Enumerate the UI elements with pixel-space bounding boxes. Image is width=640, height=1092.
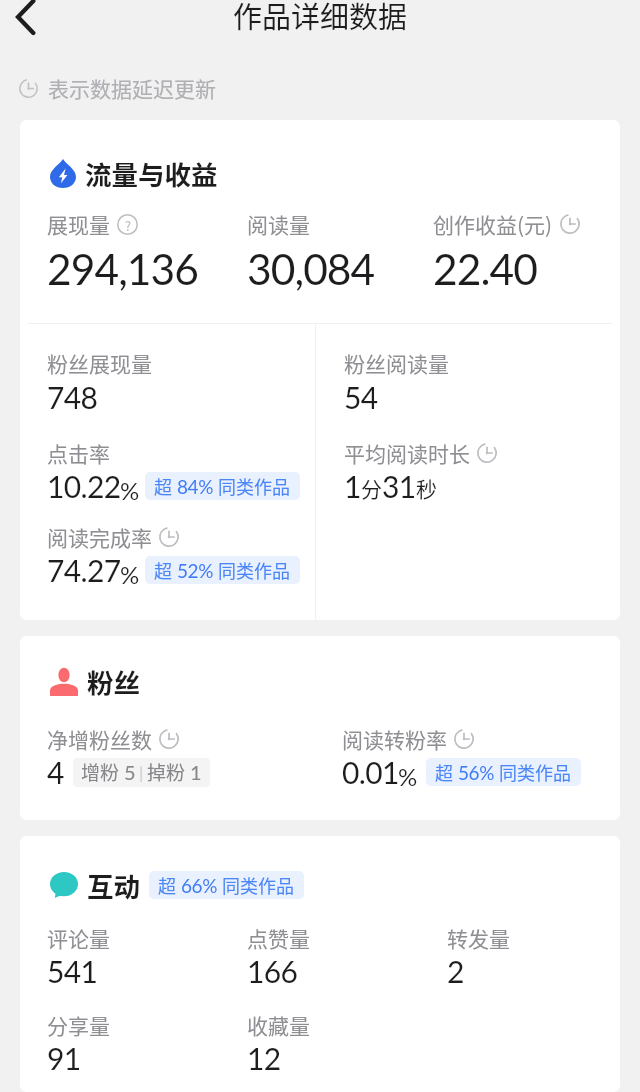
- staticText: 作品详细数据: [233, 0, 408, 36]
- staticText: 点赞量: [247, 923, 310, 953]
- staticText: 84%: [177, 475, 214, 498]
- staticText: 22.40: [433, 243, 537, 294]
- staticText: 同类作品: [214, 557, 291, 583]
- staticText: 增粉: [81, 758, 124, 786]
- staticText: 超: [435, 759, 458, 785]
- staticText: 12: [247, 1040, 281, 1076]
- staticText: 分享量: [47, 1010, 110, 1040]
- staticText: 分: [361, 473, 382, 503]
- staticText: 阅读完成率: [47, 522, 152, 552]
- staticText: 31: [382, 468, 416, 504]
- staticText: 表示数据延迟更新: [48, 73, 216, 103]
- staticText: 0.01: [342, 754, 399, 790]
- staticText: 10.22: [47, 468, 121, 504]
- staticText: 54: [344, 379, 378, 415]
- staticText: 阅读量: [247, 209, 310, 239]
- staticText: 1: [190, 760, 202, 784]
- button[interactable]: Back: [1, 0, 49, 41]
- staticText: 点击率: [47, 438, 110, 468]
- staticText: 净增粉丝数: [47, 724, 152, 754]
- staticText: 52%: [177, 559, 214, 582]
- staticText: 91: [47, 1040, 81, 1076]
- staticText: 66%: [181, 874, 218, 897]
- staticText: 粉丝阅读量: [344, 348, 449, 378]
- staticText: 30,084: [247, 243, 375, 294]
- staticText: 5: [124, 760, 136, 784]
- staticText: 流量与收益: [85, 154, 218, 192]
- staticText: %: [120, 476, 139, 505]
- staticText: 2: [447, 953, 464, 989]
- staticText: 同类作品: [218, 872, 295, 898]
- staticText: 超: [154, 557, 177, 583]
- staticText: 74.27: [47, 552, 121, 588]
- staticText: 转发量: [447, 923, 510, 953]
- staticText: 平均阅读时长: [344, 438, 470, 468]
- staticText: 收藏量: [247, 1010, 310, 1040]
- staticText: 1: [344, 468, 361, 504]
- staticText: 166: [247, 953, 298, 989]
- staticText: 超: [154, 473, 177, 499]
- staticText: 同类作品: [495, 759, 572, 785]
- staticText: 541: [47, 953, 98, 989]
- staticText: 秒: [416, 473, 437, 503]
- staticText: 超: [158, 872, 181, 898]
- staticText: %: [120, 560, 139, 589]
- staticText: %: [398, 762, 417, 791]
- staticText: 同类作品: [214, 473, 291, 499]
- staticText: 互动: [87, 866, 140, 904]
- staticText: 粉丝: [87, 662, 140, 700]
- staticText: 56%: [458, 761, 495, 784]
- staticText: 阅读转粉率: [342, 724, 447, 754]
- staticText: 评论量: [47, 923, 110, 953]
- staticText: 4: [47, 754, 64, 790]
- staticText: |: [136, 762, 147, 782]
- staticText: 掉粉: [147, 758, 190, 786]
- staticText: 294,136: [47, 243, 199, 294]
- staticText: 展现量: [47, 209, 110, 239]
- staticText: 创作收益(元): [433, 209, 553, 239]
- staticText: 粉丝展现量: [47, 348, 152, 378]
- staticText: ?: [125, 216, 131, 234]
- staticText: 748: [47, 379, 98, 415]
